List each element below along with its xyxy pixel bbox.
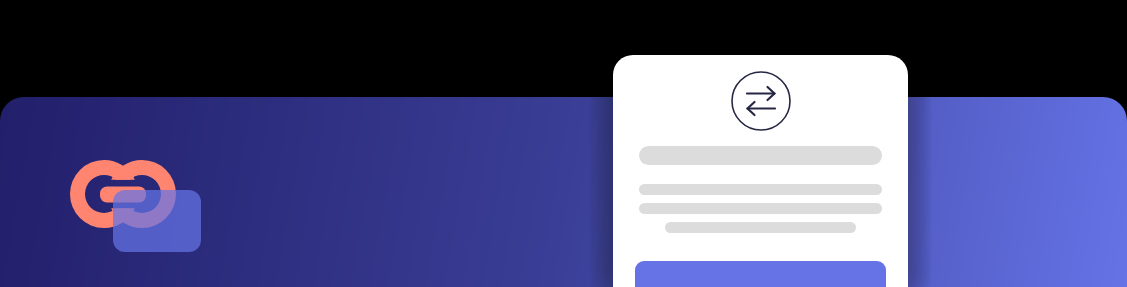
button[interactable]: Link app logo bbox=[60, 150, 210, 260]
button[interactable] bbox=[613, 55, 908, 287]
